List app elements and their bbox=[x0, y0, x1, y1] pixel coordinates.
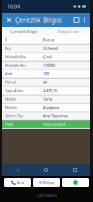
button[interactable]: Zemin Tipi bbox=[2, 112, 90, 120]
button[interactable]: Ada bbox=[2, 70, 90, 78]
staticText: İlçe bbox=[5, 45, 11, 51]
button[interactable]: 📞 bbox=[4, 178, 31, 187]
button[interactable]: Home bbox=[31, 164, 60, 176]
staticText: 📞 bbox=[11, 180, 16, 185]
button[interactable]: İlçe bbox=[2, 44, 90, 53]
button[interactable]: ✉ bbox=[33, 178, 60, 187]
staticText: Mevkii bbox=[5, 105, 17, 110]
staticText: Bursa bbox=[43, 37, 54, 42]
staticText: 109 bbox=[43, 71, 49, 76]
button[interactable]: Çerezlik Bilgisi bbox=[2, 27, 46, 36]
staticText: Mahalle/Köy bbox=[5, 54, 26, 59]
button[interactable]: Close bbox=[3, 13, 15, 27]
button[interactable]: WhatsApp bbox=[62, 178, 89, 187]
staticText: Tarla bbox=[43, 96, 52, 101]
button[interactable]: More options bbox=[81, 13, 88, 27]
staticText: ◁ bbox=[15, 168, 18, 172]
staticText: 4.470,16 bbox=[43, 88, 57, 93]
button[interactable]: İl bbox=[2, 36, 90, 44]
staticText: Ada bbox=[5, 71, 12, 76]
staticText: Detaylı Liste bbox=[57, 29, 78, 34]
button[interactable]: Recent apps bbox=[60, 164, 89, 176]
staticText: Mahalle No bbox=[5, 62, 25, 68]
staticText: ✉ bbox=[39, 180, 42, 185]
staticText: İl bbox=[5, 37, 7, 42]
staticText: 0-457384/23 bbox=[36, 193, 56, 198]
staticText: Orhaneli bbox=[43, 45, 58, 51]
staticText: 40 bbox=[43, 79, 47, 85]
button[interactable]: Detaylı Liste bbox=[46, 27, 90, 36]
button[interactable]: Mevkii bbox=[2, 104, 90, 112]
staticText: 110000 bbox=[43, 62, 55, 68]
staticText: Çerezlik Bilgisi bbox=[10, 29, 37, 34]
staticText: Ara bbox=[17, 180, 24, 185]
button[interactable]: Pafta bbox=[2, 120, 90, 129]
button[interactable]: Parsel bbox=[2, 78, 90, 87]
button[interactable]: Mahalle No bbox=[2, 61, 90, 70]
staticText: Parsel bbox=[5, 79, 16, 85]
button[interactable]: Edit bbox=[72, 13, 81, 27]
button[interactable]: Tapu Alanı bbox=[2, 87, 90, 95]
button[interactable]: Nitelik bbox=[2, 95, 90, 103]
staticText: Çivili bbox=[43, 54, 52, 59]
staticText: Ana Taşınmaz bbox=[43, 113, 68, 118]
staticText: Çerezlik Bilgisi bbox=[15, 16, 62, 24]
staticText: Tapu Alanı bbox=[5, 88, 23, 93]
button[interactable]: Back bbox=[2, 164, 31, 176]
staticText: 16:04 bbox=[7, 3, 20, 10]
staticText: Zemin Tipi bbox=[5, 113, 23, 118]
staticText: Pafta bbox=[5, 122, 13, 127]
staticText: 2023-20-R-4-4 bbox=[43, 122, 65, 127]
staticText: Aşağıova bbox=[43, 105, 59, 110]
staticText: Mesaj bbox=[43, 180, 54, 185]
button[interactable]: Mahalle/Köy bbox=[2, 53, 90, 61]
staticText: ✕ bbox=[5, 15, 12, 25]
staticText: Nitelik bbox=[5, 96, 16, 101]
